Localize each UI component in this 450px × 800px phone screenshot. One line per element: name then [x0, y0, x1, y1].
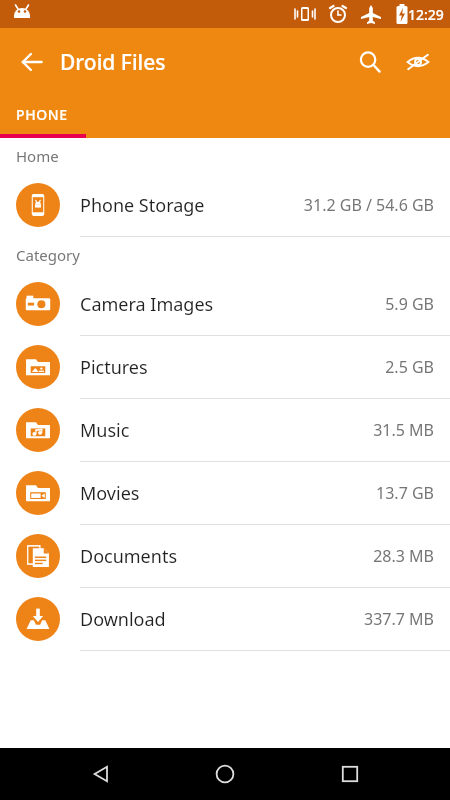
- button[interactable]: Download: [0, 588, 450, 650]
- staticText: PHONE: [16, 105, 68, 124]
- button[interactable]: Back: [77, 750, 125, 798]
- button[interactable]: Pictures: [0, 336, 450, 398]
- staticText: 28.3 MB: [373, 545, 434, 567]
- button[interactable]: Search: [346, 38, 394, 86]
- button[interactable]: Hide hidden files: [394, 38, 442, 86]
- button[interactable]: Phone Storage: [0, 174, 450, 236]
- button[interactable]: Home: [201, 750, 249, 798]
- staticText: Movies: [80, 481, 140, 506]
- staticText: Camera Images: [80, 292, 214, 317]
- staticText: Category: [16, 245, 80, 265]
- button[interactable]: Documents: [0, 525, 450, 587]
- button[interactable]: Back: [8, 38, 56, 86]
- staticText: Droid Files: [60, 48, 166, 77]
- staticText: 31.2 GB / 54.6 GB: [303, 194, 434, 216]
- staticText: Music: [80, 418, 130, 443]
- button[interactable]: Movies: [0, 462, 450, 524]
- staticText: 12:29: [408, 5, 444, 24]
- staticText: 5.9 GB: [385, 293, 434, 315]
- staticText: Phone Storage: [80, 193, 205, 218]
- button[interactable]: Music: [0, 399, 450, 461]
- button[interactable]: PHONE: [0, 96, 86, 138]
- button[interactable]: Recents: [326, 750, 374, 798]
- staticText: Home: [16, 146, 59, 166]
- staticText: 2.5 GB: [385, 356, 434, 378]
- button[interactable]: Camera Images: [0, 273, 450, 335]
- staticText: Documents: [80, 544, 178, 569]
- staticText: Download: [80, 607, 166, 632]
- staticText: Pictures: [80, 355, 148, 380]
- staticText: 31.5 MB: [373, 419, 434, 441]
- staticText: 13.7 GB: [376, 482, 434, 504]
- staticText: 337.7 MB: [364, 608, 434, 630]
